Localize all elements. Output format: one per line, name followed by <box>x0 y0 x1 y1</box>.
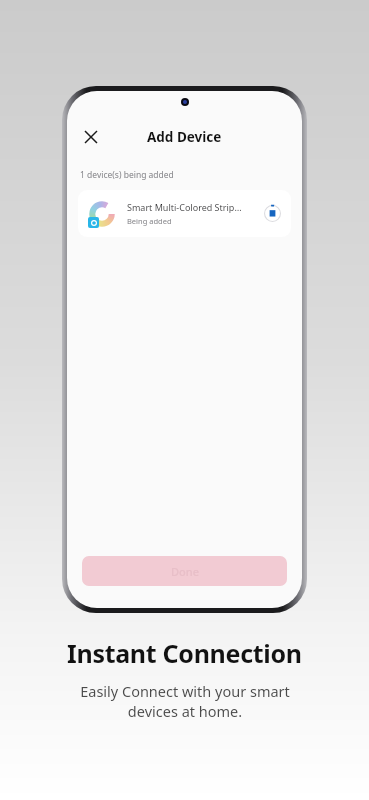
button[interactable]: Smart Multi-Colored Strip… <box>78 190 291 237</box>
other: Connecting <box>264 205 281 222</box>
staticText: Done <box>171 564 199 579</box>
staticText: Easily Connect with your smart devices a… <box>80 681 290 722</box>
staticText: Smart Multi-Colored Strip… <box>127 201 242 213</box>
staticText: Instant Connection <box>67 636 302 670</box>
button[interactable]: Close <box>75 121 107 153</box>
staticText: Add Device <box>147 128 222 146</box>
staticText: 1 device(s) being added <box>80 169 174 181</box>
button[interactable]: Done <box>82 556 287 586</box>
staticText: Being added <box>127 216 172 226</box>
